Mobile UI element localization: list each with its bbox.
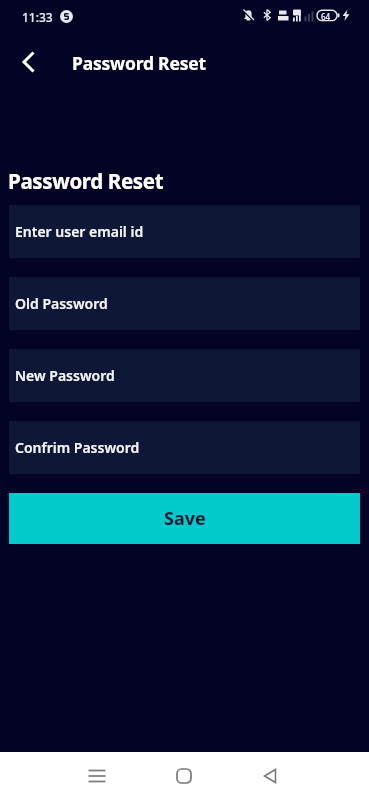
staticText: Save <box>164 506 206 531</box>
button[interactable]: Old Password <box>9 277 360 330</box>
button[interactable] <box>78 755 116 797</box>
staticText: Old Password <box>15 294 108 313</box>
staticText: 64 <box>321 11 331 22</box>
button[interactable] <box>8 43 46 81</box>
staticText: 11:33 <box>22 9 53 25</box>
staticText: Enter user email id <box>15 222 144 241</box>
button[interactable]: Enter user email id <box>9 205 360 258</box>
staticText: Confrim Password <box>15 438 140 457</box>
button[interactable]: Save <box>9 493 360 544</box>
button[interactable]: New Password <box>9 349 360 402</box>
button[interactable] <box>251 755 289 797</box>
staticText: Password Reset <box>8 167 164 195</box>
staticText: Password Reset <box>72 51 206 75</box>
button[interactable]: Confrim Password <box>9 421 360 474</box>
button[interactable] <box>165 755 203 797</box>
staticText: New Password <box>15 366 115 385</box>
